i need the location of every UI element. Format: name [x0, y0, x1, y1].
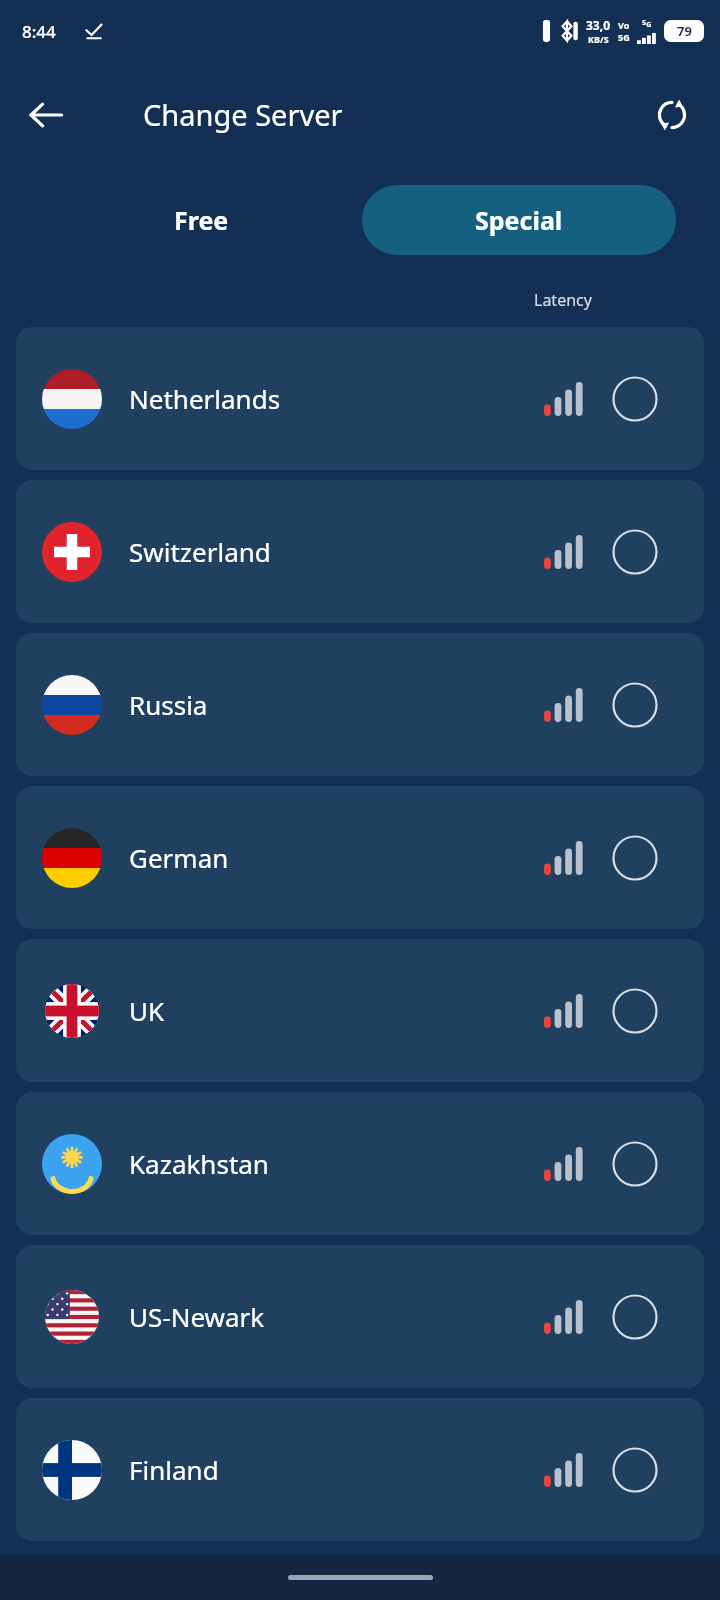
staticText: Latency — [534, 289, 592, 311]
staticText: 8:44 — [22, 20, 56, 43]
staticText: Special — [475, 203, 563, 237]
staticText: KB/S — [588, 33, 609, 45]
staticText: Finland — [129, 1452, 219, 1487]
staticText: Free — [174, 203, 229, 237]
button[interactable]: Netherlands — [16, 327, 704, 470]
staticText: Vo — [618, 19, 630, 31]
button[interactable]: Finland — [16, 1398, 704, 1541]
button[interactable]: US-Newark — [16, 1245, 704, 1388]
button[interactable]: Free — [44, 185, 358, 255]
staticText: Russia — [129, 687, 208, 722]
staticText: UK — [129, 993, 165, 1028]
staticText: Kazakhstan — [129, 1146, 269, 1181]
staticText: 5G — [618, 31, 630, 43]
button[interactable]: Kazakhstan — [16, 1092, 704, 1235]
button[interactable]: Russia — [16, 633, 704, 776]
staticText: Netherlands — [129, 381, 281, 416]
staticText: US-Newark — [129, 1299, 265, 1334]
staticText: Change Server — [143, 95, 343, 134]
button[interactable]: German — [16, 786, 704, 929]
button[interactable]: Special — [362, 185, 676, 255]
staticText: Switzerland — [129, 534, 271, 569]
button[interactable]: Switzerland — [16, 480, 704, 623]
button[interactable]: Refresh — [644, 87, 700, 143]
button[interactable]: UK — [16, 939, 704, 1082]
staticText: ⁵ᴳ — [642, 18, 652, 33]
staticText: 33,0 — [586, 17, 611, 33]
staticText: 79 — [677, 22, 692, 40]
button[interactable]: Back — [18, 87, 74, 143]
staticText: German — [129, 840, 229, 875]
